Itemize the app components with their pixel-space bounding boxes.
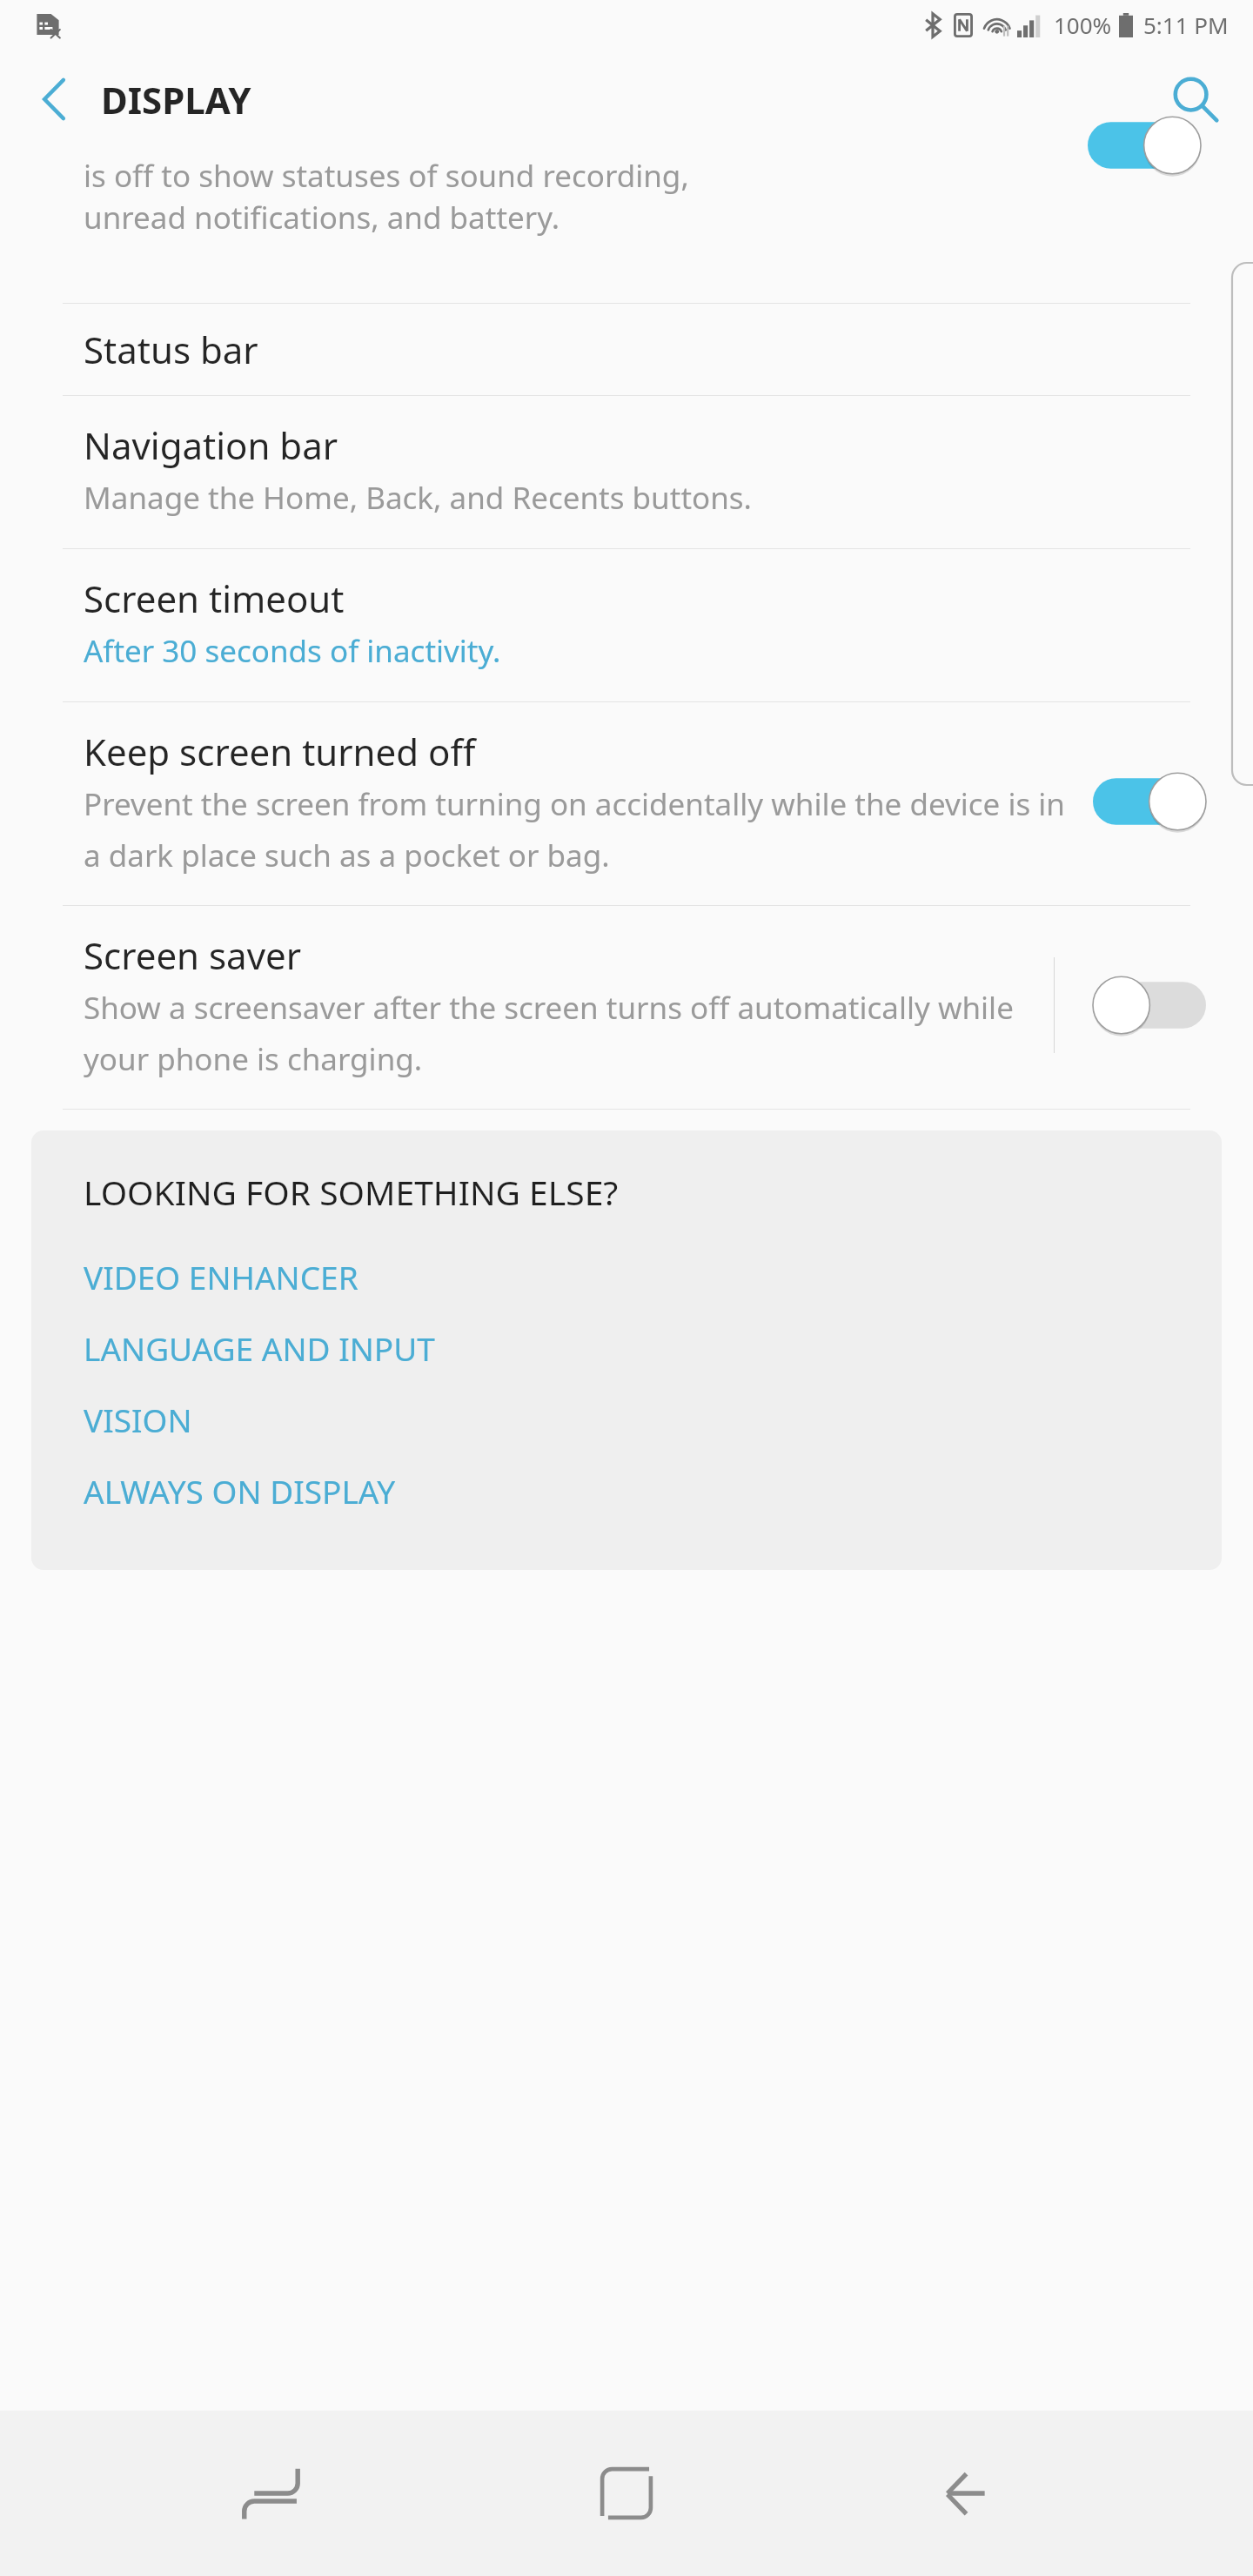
staticText: ALWAYS ON DISPLAY bbox=[84, 1469, 396, 1513]
staticText: VISION bbox=[84, 1398, 192, 1441]
staticText: Keep screen turned off bbox=[84, 727, 476, 776]
staticText: Status bar bbox=[84, 325, 258, 374]
button[interactable]: VIDEO ENHANCER bbox=[84, 1241, 1187, 1312]
staticText: Screen saver bbox=[84, 930, 302, 980]
button[interactable]: Recents bbox=[216, 2428, 346, 2559]
button[interactable]: ALWAYS ON DISPLAY bbox=[84, 1455, 1187, 1526]
staticText: Show a screensaver after the screen turn… bbox=[84, 987, 1033, 1079]
button[interactable]: Back bbox=[19, 64, 89, 134]
staticText: 5:11 PM bbox=[1143, 10, 1229, 40]
button[interactable]: Screen saver bbox=[84, 930, 1054, 1079]
button[interactable]: Screen saver toggle bbox=[1093, 968, 1206, 1043]
button[interactable]: Home bbox=[561, 2428, 692, 2559]
staticText: Screen timeout bbox=[84, 574, 345, 623]
button[interactable]: VISION bbox=[84, 1384, 1187, 1455]
staticText: LOOKING FOR SOMETHING ELSE? bbox=[84, 1169, 619, 1215]
staticText: Prevent the screen from turning on accid… bbox=[84, 783, 1067, 875]
button[interactable]: Navigation bar bbox=[0, 396, 1253, 548]
staticText: LANGUAGE AND INPUT bbox=[84, 1326, 435, 1370]
staticText: DISPLAY bbox=[101, 75, 251, 124]
button[interactable]: Search bbox=[1159, 63, 1232, 136]
button[interactable]: Screen timeout bbox=[0, 549, 1253, 701]
button[interactable]: Back bbox=[908, 2428, 1038, 2559]
button[interactable]: Keep screen turned off bbox=[0, 702, 1253, 905]
button[interactable]: LANGUAGE AND INPUT bbox=[84, 1312, 1187, 1384]
staticText: VIDEO ENHANCER bbox=[84, 1255, 358, 1298]
button[interactable]: Status bar bbox=[0, 304, 1253, 395]
staticText: Navigation bar bbox=[84, 420, 338, 470]
staticText: 100% bbox=[1054, 10, 1112, 40]
staticText: After 30 seconds of inactivity. bbox=[84, 630, 501, 672]
staticText: Manage the Home, Back, and Recents butto… bbox=[84, 477, 752, 519]
staticText: is off to show statuses of sound recordi… bbox=[84, 155, 689, 197]
staticText: unread notifications, and battery. bbox=[84, 197, 560, 238]
